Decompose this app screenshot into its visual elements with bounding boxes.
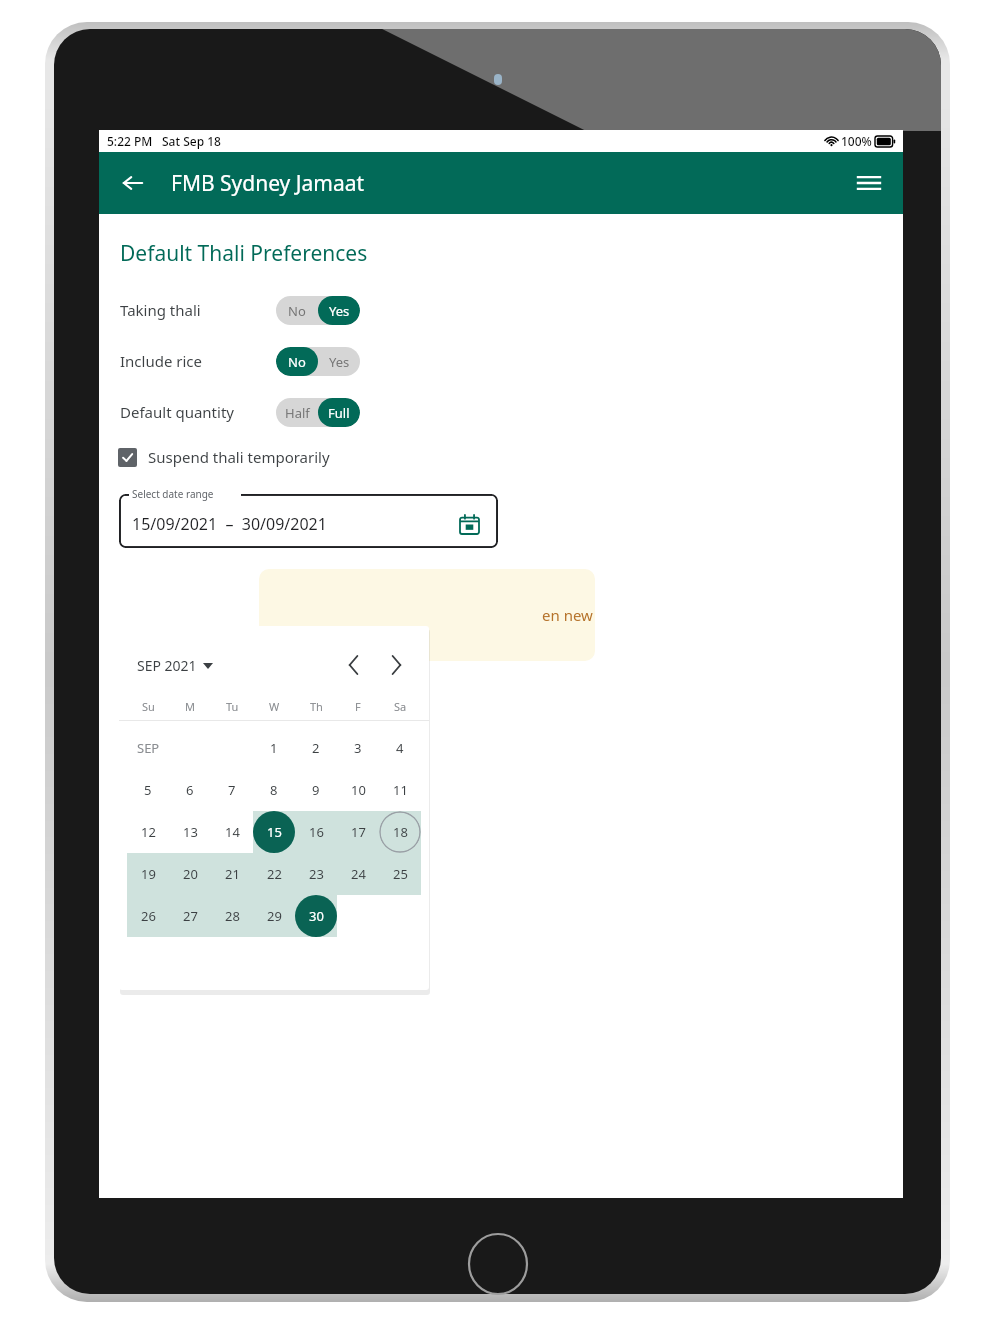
staticText: Yes <box>329 302 350 320</box>
staticText: 4 <box>396 739 404 757</box>
button[interactable]: Suspend thali temporarily <box>118 447 330 467</box>
button[interactable]: 24 <box>337 853 379 895</box>
staticText: 14 <box>225 823 240 841</box>
staticText: 15/09/2021 – 30/09/2021 <box>132 513 327 535</box>
staticText: 25 <box>393 865 408 883</box>
staticText: 2 <box>312 739 320 757</box>
staticText: Taking thali <box>120 300 201 320</box>
staticText: 6 <box>186 781 194 799</box>
staticText: 5:22 PM <box>107 133 153 149</box>
staticText: 18 <box>393 823 408 841</box>
staticText: 26 <box>141 907 156 925</box>
staticText: F <box>355 699 361 714</box>
button[interactable]: 2 <box>295 727 337 769</box>
staticText: Tu <box>226 699 239 714</box>
staticText: 15 <box>267 823 282 841</box>
button[interactable]: 9 <box>295 769 337 811</box>
button[interactable]: 6 <box>169 769 211 811</box>
staticText: 27 <box>183 907 198 925</box>
button[interactable]: 10 <box>337 769 379 811</box>
staticText: Default Thali Preferences <box>120 239 368 268</box>
staticText: 5 <box>144 781 152 799</box>
button[interactable]: 26 <box>127 895 169 937</box>
staticText: Sa <box>394 699 407 714</box>
staticText: 29 <box>267 907 282 925</box>
button[interactable]: 16 <box>295 811 337 853</box>
staticText: 16 <box>309 823 324 841</box>
button[interactable]: 22 <box>253 853 295 895</box>
button[interactable]: 7 <box>211 769 253 811</box>
staticText: SEP 2021 <box>137 656 197 675</box>
staticText: 3 <box>354 739 362 757</box>
button[interactable]: 19 <box>127 853 169 895</box>
button[interactable]: 8 <box>253 769 295 811</box>
staticText: 23 <box>309 865 324 883</box>
staticText: M <box>185 699 195 714</box>
staticText: Default quantity <box>120 402 234 422</box>
button[interactable]: 20 <box>169 853 211 895</box>
staticText: 28 <box>225 907 240 925</box>
button[interactable]: 13 <box>169 811 211 853</box>
staticText: 7 <box>228 781 236 799</box>
staticText: 8 <box>270 781 278 799</box>
staticText: 19 <box>141 865 156 883</box>
staticText: 20 <box>183 865 198 883</box>
button[interactable]: No <box>276 296 360 325</box>
staticText: 12 <box>141 823 156 841</box>
button[interactable]: 14 <box>211 811 253 853</box>
staticText: 30 <box>309 907 324 925</box>
staticText: Half <box>285 404 310 422</box>
staticText: Sat Sep 18 <box>162 133 221 149</box>
staticText: W <box>269 699 280 714</box>
button[interactable]: 3 <box>337 727 379 769</box>
button[interactable]: 18 <box>379 811 421 853</box>
staticText: 24 <box>351 865 366 883</box>
button[interactable]: 30 <box>295 895 337 937</box>
staticText: 10 <box>351 781 366 799</box>
staticText: 9 <box>312 781 320 799</box>
button[interactable]: 5 <box>127 769 169 811</box>
button[interactable]: 1 <box>253 727 295 769</box>
staticText: Yes <box>329 353 350 371</box>
button[interactable]: 25 <box>379 853 421 895</box>
button[interactable]: Open calendar <box>454 509 484 539</box>
button[interactable]: 12 <box>127 811 169 853</box>
staticText: 11 <box>393 781 408 799</box>
staticText: Su <box>142 699 155 714</box>
button[interactable]: en new <box>259 569 595 661</box>
button[interactable]: 11 <box>379 769 421 811</box>
button[interactable]: 4 <box>379 727 421 769</box>
staticText: FMB Sydney Jamaat <box>171 169 365 198</box>
button[interactable]: 15/09/2021 – 30/09/2021 <box>119 494 498 548</box>
staticText: 22 <box>267 865 282 883</box>
button[interactable]: 15 <box>253 811 295 853</box>
button[interactable]: 27 <box>169 895 211 937</box>
button[interactable]: 23 <box>295 853 337 895</box>
button[interactable]: 29 <box>253 895 295 937</box>
button[interactable]: SEP 2021 <box>137 656 213 675</box>
button[interactable]: Half <box>276 398 360 427</box>
staticText: SEP <box>137 739 160 757</box>
staticText: 13 <box>183 823 198 841</box>
button[interactable]: Back <box>113 163 153 203</box>
staticText: Suspend thali temporarily <box>148 447 330 467</box>
button[interactable]: No <box>276 347 360 376</box>
staticText: Include rice <box>120 351 203 371</box>
staticText: Full <box>328 404 350 422</box>
button[interactable]: 28 <box>211 895 253 937</box>
button[interactable]: 21 <box>211 853 253 895</box>
button[interactable]: Menu <box>849 163 889 203</box>
staticText: 100% <box>841 133 872 149</box>
staticText: 1 <box>270 739 278 757</box>
button[interactable]: 17 <box>337 811 379 853</box>
staticText: 21 <box>225 865 240 883</box>
staticText: en new <box>542 605 593 625</box>
staticText: No <box>288 302 306 320</box>
staticText: 17 <box>351 823 366 841</box>
staticText: Th <box>310 699 323 714</box>
staticText: Select date range <box>132 487 214 501</box>
button[interactable]: Previous month <box>336 650 370 680</box>
button[interactable]: Next month <box>379 650 413 680</box>
staticText: No <box>288 353 306 371</box>
